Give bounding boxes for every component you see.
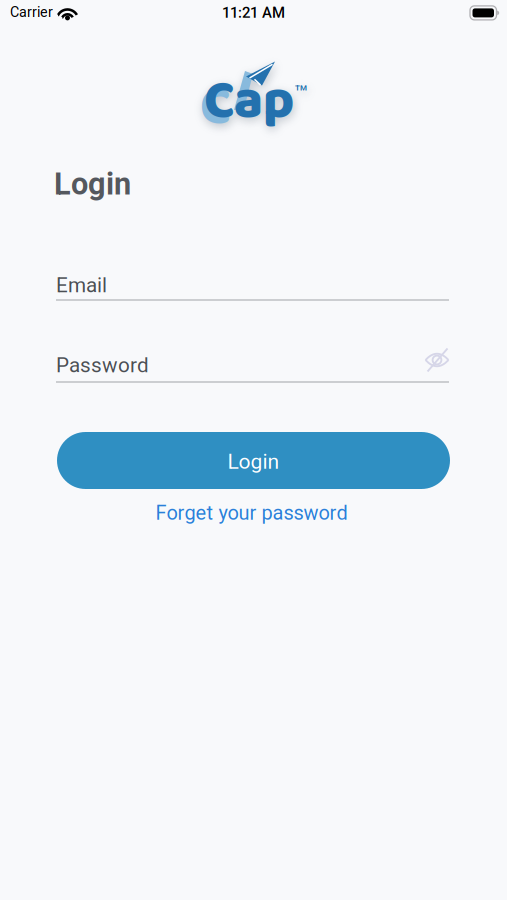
staticText: Carrier: [10, 4, 53, 20]
button[interactable]: Forget your password: [55, 499, 448, 527]
staticText: Cap: [204, 59, 294, 144]
staticText: Password: [56, 353, 149, 377]
staticText: C: [200, 65, 230, 150]
button[interactable]: Password: [56, 353, 449, 382]
button[interactable]: [424, 347, 450, 373]
staticText: 11:21 AM: [222, 4, 285, 21]
staticText: Login: [227, 449, 279, 474]
staticText: Forget your password: [155, 501, 347, 525]
button[interactable]: Email: [56, 273, 449, 301]
button[interactable]: Login: [57, 432, 450, 489]
staticText: Email: [56, 273, 107, 297]
staticText: TM: [295, 83, 307, 92]
staticText: Login: [54, 166, 131, 202]
